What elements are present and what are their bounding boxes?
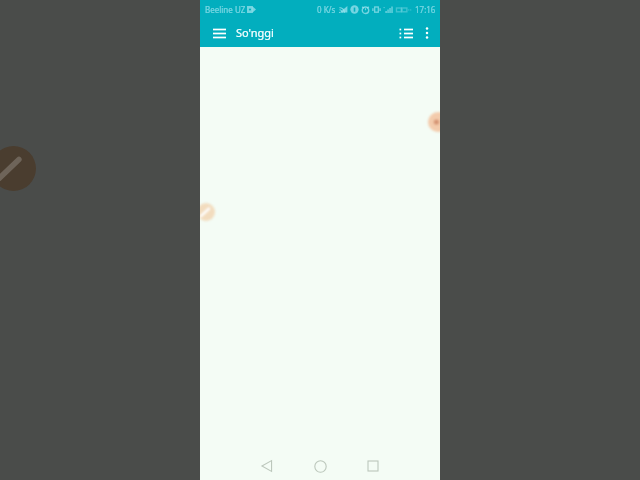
button[interactable]: More options: [417, 23, 437, 43]
staticText: So'nggi: [236, 25, 274, 40]
button[interactable]: List view: [395, 20, 417, 46]
staticText: 0 K/s: [317, 4, 336, 15]
button[interactable]: Home: [305, 452, 335, 480]
button[interactable]: Recent apps: [358, 452, 388, 480]
staticText: Beeline UZ: [205, 4, 246, 15]
button[interactable]: Back: [252, 452, 282, 480]
staticText: 17:16: [415, 4, 436, 15]
button[interactable]: Open navigation drawer: [206, 20, 232, 46]
